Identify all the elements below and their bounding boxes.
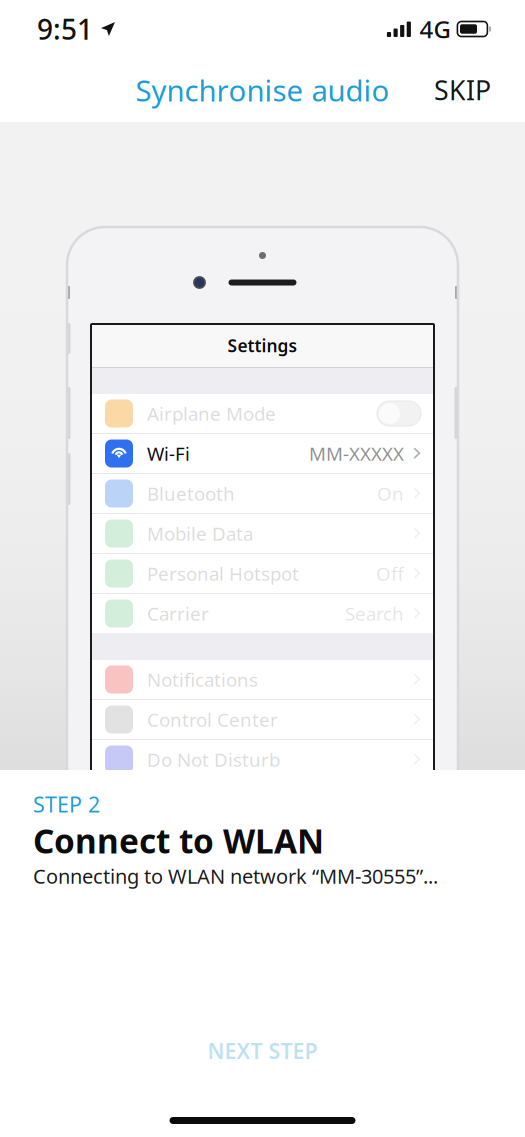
staticText: Mobile Data xyxy=(147,521,253,546)
staticText: MM-XXXXX xyxy=(309,441,404,466)
staticText: Settings xyxy=(227,334,297,357)
staticText: Carrier xyxy=(147,601,209,626)
staticText: Synchronise audio xyxy=(135,70,389,109)
button[interactable]: SKIP xyxy=(412,58,513,122)
button[interactable]: NEXT STEP xyxy=(33,1023,492,1079)
staticText: Personal Hotspot xyxy=(147,561,299,586)
staticText: Notifications xyxy=(147,667,258,692)
staticText: Connecting to WLAN network “MM-30555”... xyxy=(33,863,438,889)
staticText: Control Center xyxy=(147,707,278,732)
staticText: Do Not Disturb xyxy=(147,747,280,772)
staticText: Off xyxy=(376,561,404,586)
staticText: On xyxy=(377,481,404,506)
staticText: SKIP xyxy=(434,72,491,108)
staticText: 9:51 xyxy=(37,10,93,48)
staticText: Search xyxy=(345,601,404,626)
staticText: Airplane Mode xyxy=(147,401,276,426)
staticText: NEXT STEP xyxy=(207,1037,317,1065)
staticText: Wi-Fi xyxy=(147,441,190,466)
staticText: Connect to WLAN xyxy=(33,818,324,863)
staticText: STEP 2 xyxy=(33,790,100,818)
staticText: 4G xyxy=(419,13,450,45)
staticText: Bluetooth xyxy=(147,481,235,506)
